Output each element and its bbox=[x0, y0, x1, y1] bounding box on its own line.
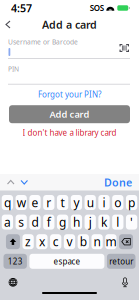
button[interactable]: I don't have a library card bbox=[22, 125, 116, 140]
button[interactable]: Scan barcode bbox=[117, 39, 131, 54]
staticText: c bbox=[53, 234, 59, 250]
staticText: u bbox=[87, 194, 94, 210]
button[interactable]: Dictate bbox=[117, 277, 133, 288]
button[interactable]: Delete bbox=[119, 234, 133, 249]
button[interactable]: s bbox=[16, 215, 27, 230]
button[interactable]: t bbox=[57, 195, 68, 210]
button[interactable]: espace bbox=[29, 254, 104, 269]
staticText: I don't have a library card bbox=[22, 127, 116, 138]
staticText: retour bbox=[109, 256, 133, 267]
staticText: s bbox=[18, 214, 24, 230]
staticText: Add a card bbox=[42, 17, 97, 32]
staticText: p bbox=[128, 194, 135, 210]
button[interactable]: y bbox=[71, 195, 82, 210]
staticText: SOS bbox=[90, 3, 104, 13]
button[interactable]: Shift bbox=[6, 234, 20, 249]
staticText: 123 bbox=[8, 256, 23, 267]
button[interactable]: b bbox=[78, 234, 89, 249]
staticText: i bbox=[102, 194, 105, 210]
button[interactable]: Next field bbox=[17, 175, 31, 189]
button[interactable]: i bbox=[98, 195, 110, 210]
staticText: d bbox=[31, 214, 38, 230]
button[interactable]: l bbox=[112, 215, 123, 230]
button[interactable]: w bbox=[16, 195, 27, 210]
staticText: espace bbox=[53, 256, 80, 267]
button[interactable]: r bbox=[43, 195, 54, 210]
staticText: a bbox=[4, 214, 11, 230]
button[interactable]: Switch keyboard bbox=[4, 277, 22, 288]
staticText: v bbox=[66, 234, 72, 250]
staticText: l bbox=[116, 214, 119, 230]
button[interactable]: d bbox=[29, 215, 41, 230]
staticText: b bbox=[80, 234, 87, 250]
staticText: f bbox=[47, 214, 51, 230]
staticText: t bbox=[61, 194, 65, 210]
button[interactable]: Back bbox=[0, 17, 17, 32]
button[interactable]: m bbox=[105, 234, 116, 249]
button[interactable]: h bbox=[71, 215, 82, 230]
button[interactable]: c bbox=[50, 234, 61, 249]
staticText: PIN bbox=[8, 64, 19, 73]
staticText: ' bbox=[130, 214, 133, 230]
button[interactable]: v bbox=[64, 234, 75, 249]
staticText: r bbox=[46, 194, 51, 210]
staticText: h bbox=[73, 214, 80, 230]
staticText: Done bbox=[104, 175, 132, 189]
staticText: e bbox=[31, 194, 38, 210]
staticText: w bbox=[17, 194, 26, 210]
button[interactable]: ' bbox=[126, 215, 137, 230]
staticText: n bbox=[94, 234, 101, 250]
staticText: z bbox=[25, 234, 31, 250]
staticText: y bbox=[73, 194, 79, 210]
button[interactable]: j bbox=[84, 215, 96, 230]
button[interactable]: e bbox=[29, 195, 41, 210]
button[interactable]: x bbox=[36, 234, 47, 249]
button[interactable]: Done bbox=[97, 172, 139, 192]
staticText: k bbox=[101, 214, 107, 230]
staticText: Forgot your PIN? bbox=[38, 89, 101, 100]
button[interactable]: z bbox=[22, 234, 34, 249]
button[interactable]: 123 bbox=[3, 254, 27, 269]
button[interactable]: Add card bbox=[9, 105, 130, 123]
staticText: j bbox=[89, 214, 92, 230]
button[interactable]: a bbox=[2, 215, 13, 230]
button[interactable]: retour bbox=[107, 254, 135, 269]
staticText: 4:57 bbox=[11, 1, 32, 15]
button[interactable]: Forgot your PIN? bbox=[38, 87, 101, 102]
button[interactable]: n bbox=[91, 234, 103, 249]
staticText: x bbox=[39, 234, 45, 250]
staticText: g bbox=[59, 214, 66, 230]
staticText: q bbox=[4, 194, 11, 210]
button[interactable]: f bbox=[43, 215, 54, 230]
button[interactable]: g bbox=[57, 215, 68, 230]
staticText: Add card bbox=[49, 108, 89, 120]
button[interactable]: k bbox=[98, 215, 110, 230]
button[interactable]: o bbox=[112, 195, 123, 210]
button[interactable]: u bbox=[84, 195, 96, 210]
staticText: Username or Barcode bbox=[8, 38, 78, 46]
button[interactable]: p bbox=[126, 195, 137, 210]
staticText: o bbox=[114, 194, 121, 210]
button[interactable]: Previous field bbox=[4, 175, 17, 189]
button[interactable]: q bbox=[2, 195, 13, 210]
staticText: m bbox=[105, 234, 116, 250]
